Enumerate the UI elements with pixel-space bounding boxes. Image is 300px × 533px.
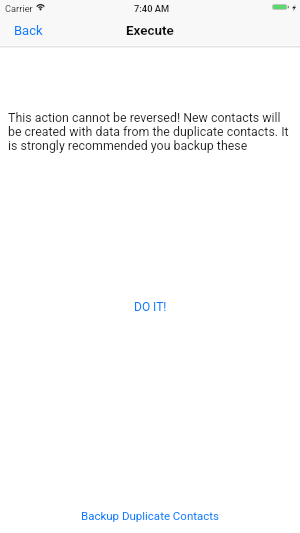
button[interactable]: Back — [0, 21, 55, 42]
staticText: Carrier — [5, 3, 33, 14]
staticText: Back — [14, 23, 43, 38]
staticText: Execute — [126, 23, 174, 39]
staticText: DO IT! — [134, 300, 167, 314]
staticText: 7:40 AM — [134, 3, 170, 14]
staticText: Backup Duplicate Contacts — [81, 509, 219, 522]
staticText: This action cannot be reversed! New cont… — [8, 110, 293, 153]
button[interactable]: DO IT! — [118, 293, 183, 321]
button[interactable]: Backup Duplicate Contacts — [65, 502, 235, 529]
